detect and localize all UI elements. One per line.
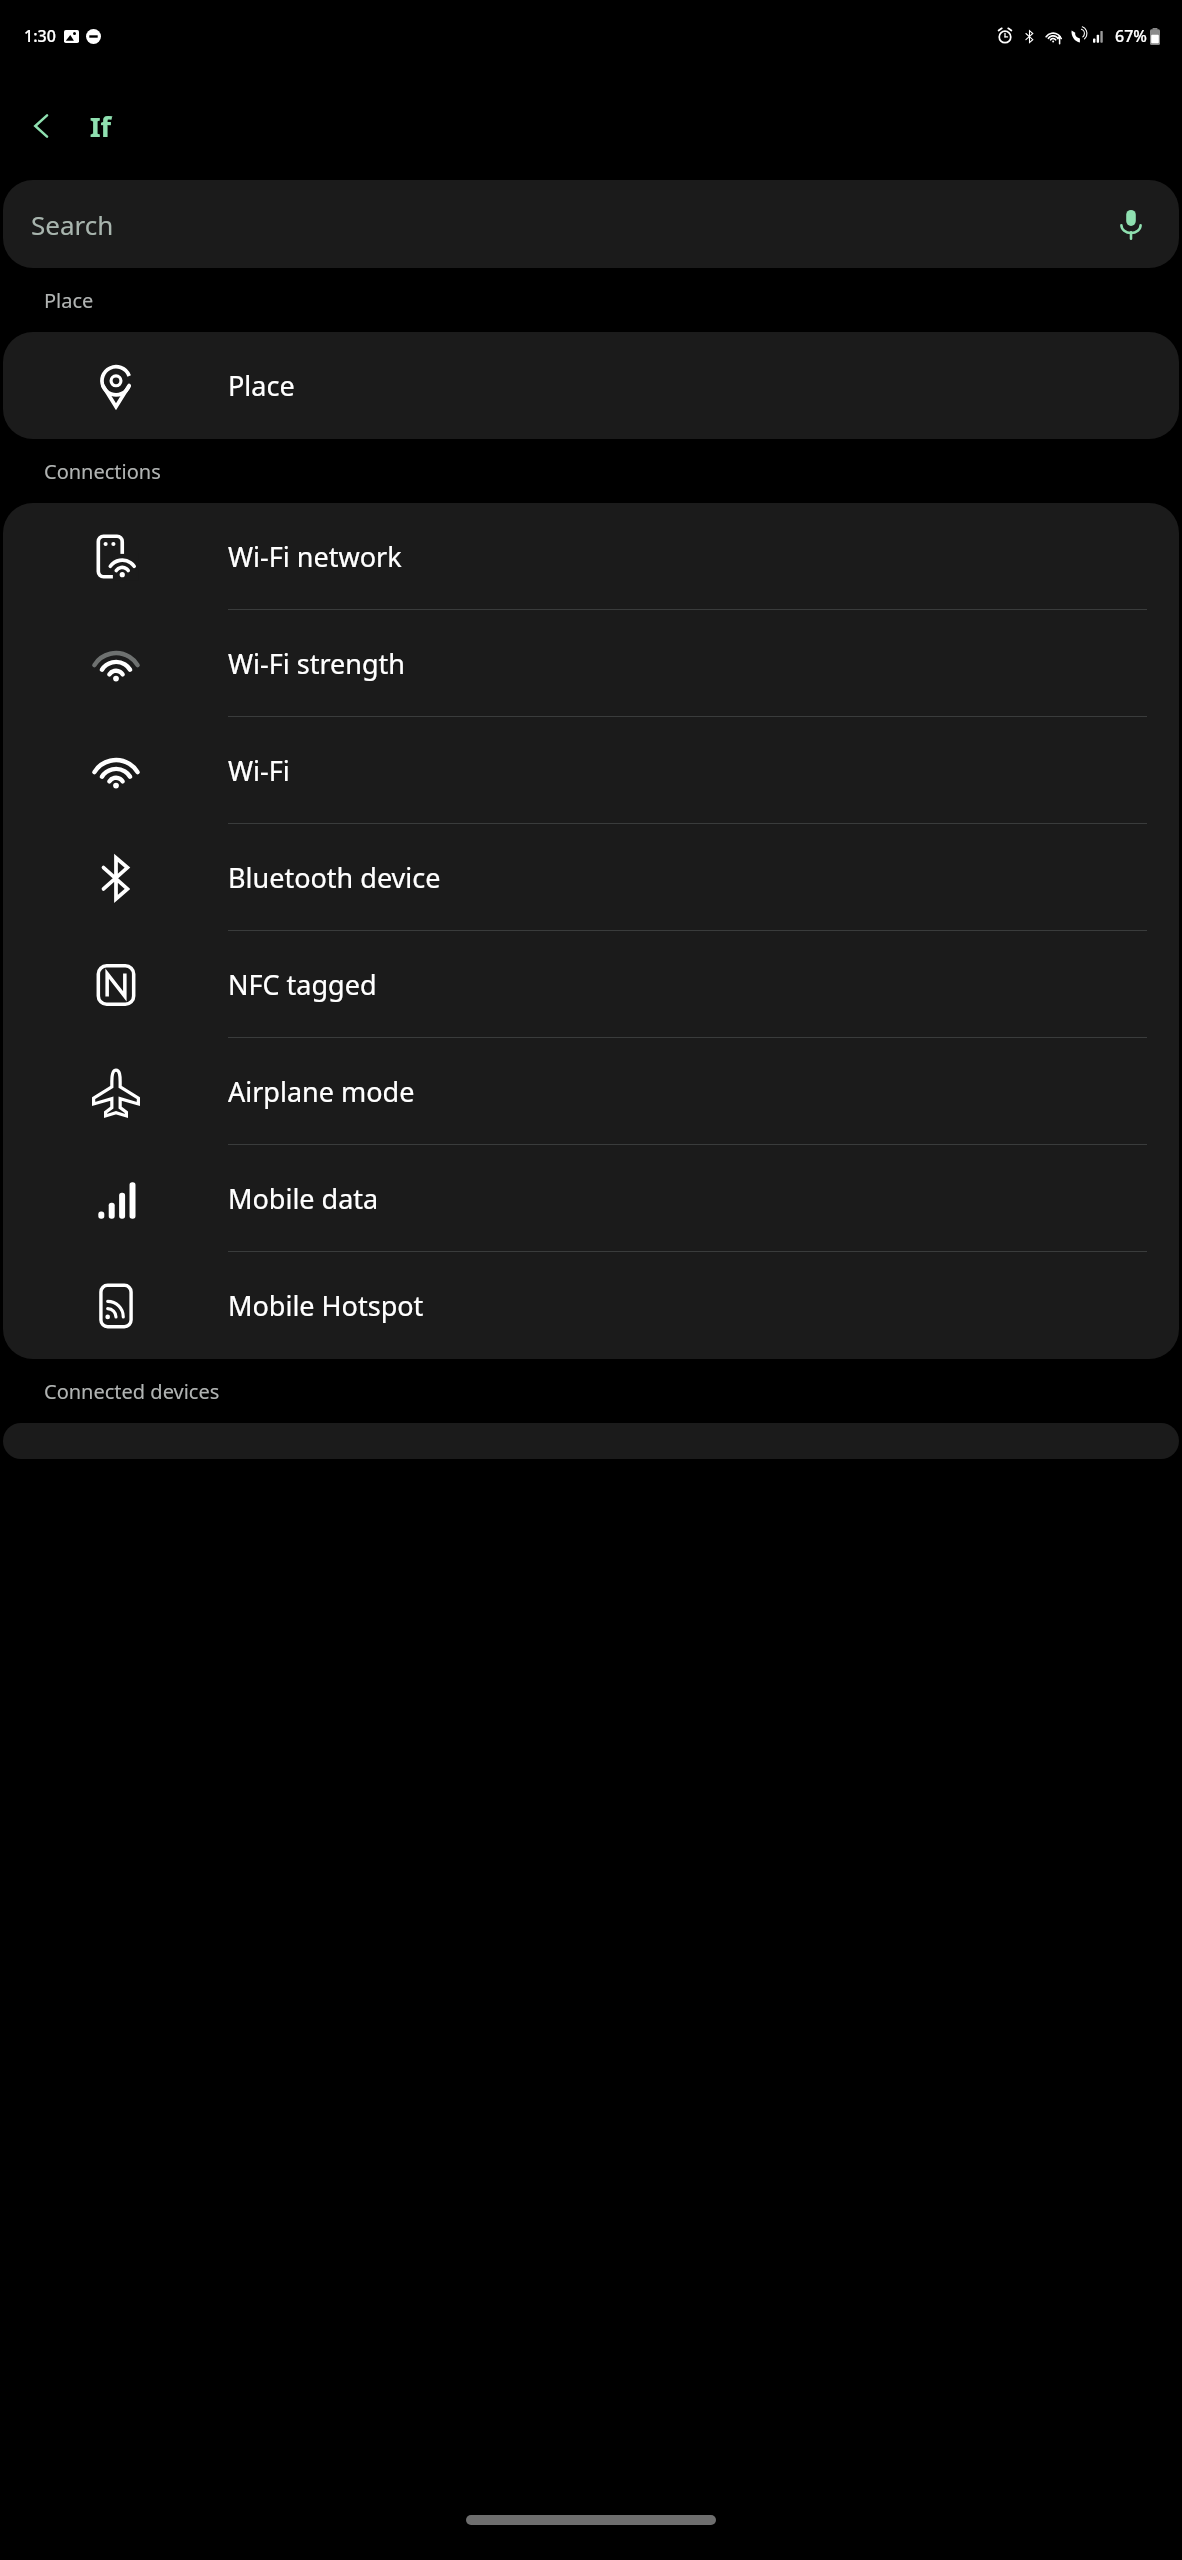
- staticText: Wi-Fi: [228, 752, 290, 789]
- staticText: Search: [31, 207, 1111, 242]
- button[interactable]: Place: [3, 332, 1179, 439]
- button[interactable]: Search: [3, 180, 1179, 268]
- staticText: 67%: [1115, 25, 1147, 47]
- staticText: Place: [44, 287, 94, 314]
- staticText: Connections: [44, 458, 161, 485]
- button[interactable]: Back: [10, 94, 74, 158]
- staticText: Wi-Fi strength: [228, 645, 406, 682]
- staticText: Mobile Hotspot: [228, 1287, 424, 1324]
- staticText: Airplane mode: [228, 1073, 415, 1110]
- staticText: Wi-Fi network: [228, 538, 402, 575]
- staticText: 1:30: [24, 25, 56, 47]
- staticText: If: [90, 108, 111, 145]
- button[interactable]: Wi-Fi network: [3, 503, 1179, 610]
- button[interactable]: Voice search: [1111, 204, 1151, 244]
- button[interactable]: Wi-Fi: [3, 717, 1179, 824]
- staticText: Mobile data: [228, 1180, 379, 1217]
- staticText: Place: [228, 367, 295, 404]
- staticText: Bluetooth device: [228, 859, 441, 896]
- button[interactable]: Mobile Hotspot: [3, 1252, 1179, 1359]
- button[interactable]: Wi-Fi strength: [3, 610, 1179, 717]
- staticText: NFC tagged: [228, 966, 377, 1003]
- button[interactable]: Mobile data: [3, 1145, 1179, 1252]
- button[interactable]: NFC tagged: [3, 931, 1179, 1038]
- button[interactable]: Airplane mode: [3, 1038, 1179, 1145]
- staticText: Connected devices: [44, 1378, 220, 1405]
- button[interactable]: Bluetooth device: [3, 824, 1179, 931]
